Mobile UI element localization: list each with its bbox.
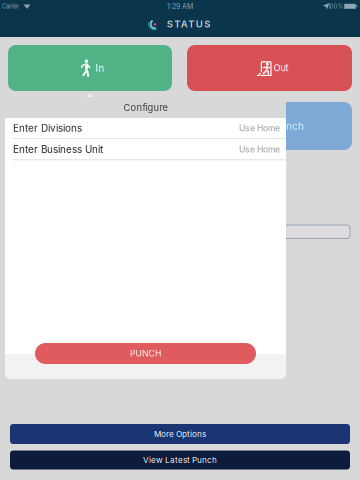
button[interactable]: PUNCH <box>35 343 256 364</box>
button[interactable]: Out <box>187 45 352 91</box>
button[interactable]: View Latest Punch <box>10 450 350 469</box>
staticText: Enter Divisions <box>13 122 82 134</box>
staticText: Configure <box>123 102 167 113</box>
staticText: In <box>95 62 104 74</box>
button[interactable]: Enter Business Unit <box>5 139 286 160</box>
staticText: 1:29 AM <box>167 2 193 11</box>
staticText: Enter Business Unit <box>13 143 103 155</box>
staticText: View Latest Punch <box>143 455 217 465</box>
button[interactable]: Punch <box>226 102 352 150</box>
staticText: Use Home <box>239 123 280 133</box>
button[interactable]: More Options <box>10 424 350 444</box>
staticText: PUNCH <box>130 348 161 359</box>
button[interactable]: In <box>8 45 172 91</box>
button[interactable]: Enter Divisions <box>5 118 286 138</box>
staticText: Carrier <box>2 3 19 10</box>
staticText: More Options <box>154 429 206 439</box>
staticText: 100% <box>328 3 343 10</box>
staticText: Punch <box>274 120 304 132</box>
staticText: STATUS <box>167 18 210 30</box>
staticText: Use Home <box>239 144 280 154</box>
staticText: Out <box>273 62 288 73</box>
